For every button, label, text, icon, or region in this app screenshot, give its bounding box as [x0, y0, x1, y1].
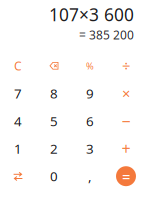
- button[interactable]: 3: [72, 135, 108, 162]
- button[interactable]: −: [108, 107, 144, 135]
- staticText: ,: [88, 167, 92, 185]
- button[interactable]: ÷: [108, 52, 144, 80]
- staticText: 1: [14, 140, 22, 157]
- button[interactable]: Delete: [36, 52, 72, 80]
- button[interactable]: C: [0, 52, 36, 80]
- staticText: ×: [122, 84, 130, 103]
- staticText: −: [121, 110, 130, 132]
- staticText: =: [122, 166, 130, 186]
- button[interactable]: 1: [0, 135, 36, 162]
- staticText: C: [14, 58, 22, 74]
- button[interactable]: 6: [72, 107, 108, 135]
- button[interactable]: %: [72, 52, 108, 80]
- button[interactable]: Convert: [0, 162, 36, 190]
- button[interactable]: 2: [36, 135, 72, 162]
- staticText: 8: [50, 84, 58, 102]
- button[interactable]: 5: [36, 107, 72, 135]
- staticText: 7: [14, 84, 22, 102]
- staticText: 5: [50, 112, 58, 130]
- staticText: 2: [50, 140, 58, 157]
- button[interactable]: 7: [0, 80, 36, 107]
- staticText: 6: [86, 112, 94, 130]
- button[interactable]: 4: [0, 107, 36, 135]
- button[interactable]: 0: [36, 162, 72, 190]
- staticText: 0: [50, 167, 58, 185]
- button[interactable]: ,: [72, 162, 108, 190]
- button[interactable]: +: [108, 135, 144, 162]
- button[interactable]: 9: [72, 80, 108, 107]
- staticText: 107×3 600: [49, 3, 134, 26]
- staticText: 4: [14, 112, 22, 130]
- staticText: 3: [86, 140, 94, 157]
- button[interactable]: 8: [36, 80, 72, 107]
- button[interactable]: Equals: [108, 162, 144, 190]
- staticText: ÷: [122, 56, 130, 76]
- staticText: %: [86, 60, 94, 72]
- button[interactable]: ×: [108, 80, 144, 107]
- staticText: 9: [86, 84, 94, 102]
- staticText: +: [121, 138, 130, 159]
- staticText: = 385 200: [79, 27, 134, 43]
